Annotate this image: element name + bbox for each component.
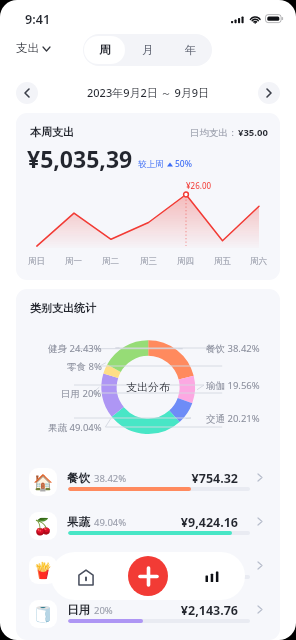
staticText: ¥26.00 [186, 180, 212, 191]
staticText: 零食 8% [67, 360, 102, 373]
button[interactable]: 🏠 [16, 460, 280, 504]
staticText: 🏠 [33, 473, 53, 492]
button[interactable]: 月 [127, 36, 168, 64]
staticText: 日用 20% [61, 387, 102, 400]
staticText: 餐饮 38.42% [206, 342, 260, 355]
staticText: 支出分布 [126, 380, 170, 394]
staticText: 健身 24.43% [48, 342, 102, 355]
staticText: 类别支出统计 [30, 301, 96, 315]
staticText: 周 [99, 43, 111, 57]
staticText: 🍒 [33, 517, 53, 536]
staticText: 果蔬 49.04% [48, 421, 102, 434]
staticText: 50% [175, 158, 192, 170]
staticText: 🧻 [33, 605, 53, 624]
staticText: 年 [185, 43, 197, 57]
staticText: 49.04% [94, 516, 127, 529]
button[interactable]: 周 [84, 36, 125, 64]
staticText: 本周支出 [30, 125, 74, 139]
button[interactable]: 🍟 [16, 548, 280, 592]
button[interactable]: Add expense [128, 556, 168, 596]
button[interactable]: Statistics [200, 566, 222, 588]
staticText: 周三 [140, 256, 157, 267]
button[interactable]: 🍒 [16, 504, 280, 548]
staticText: 🍟 [33, 561, 53, 580]
staticText: ¥754.32 [16, 470, 238, 487]
staticText: ¥35.00 [238, 126, 268, 139]
staticText: 周五 [214, 256, 231, 267]
staticText: 20% [94, 604, 113, 617]
staticText: 零食 [67, 559, 90, 573]
staticText: 38.42% [94, 472, 127, 485]
staticText: ¥1,250.00 [16, 558, 238, 575]
button[interactable]: Next period [258, 82, 280, 104]
staticText: 日均支出： [190, 127, 238, 139]
staticText: 周一 [65, 256, 82, 267]
staticText: 周二 [102, 256, 119, 267]
button[interactable]: 支出 [16, 41, 50, 55]
staticText: 周六 [250, 256, 267, 267]
staticText: ¥2,143.76 [16, 602, 238, 619]
staticText: 交通 20.21% [206, 412, 260, 425]
button[interactable]: Previous period [16, 82, 38, 104]
staticText: 2023年9月2日 ～ 9月9日 [87, 85, 210, 100]
button[interactable]: 🧻 [16, 592, 280, 636]
staticText: 日用 [67, 603, 90, 617]
staticText: 餐饮 [67, 471, 90, 485]
button[interactable]: Home [75, 566, 97, 588]
staticText: 月 [142, 43, 154, 57]
staticText: 瑜伽 19.56% [206, 379, 260, 392]
staticText: 周四 [177, 256, 194, 267]
staticText: 果蔬 [67, 515, 90, 529]
staticText: 支出 [16, 41, 39, 55]
button[interactable]: 年 [170, 36, 211, 64]
staticText: ¥9,424.16 [16, 514, 238, 531]
staticText: 较上周 [138, 159, 164, 170]
staticText: ¥5,035,39 [27, 143, 133, 174]
staticText: 9:41 [25, 11, 51, 28]
staticText: 周日 [28, 256, 45, 267]
